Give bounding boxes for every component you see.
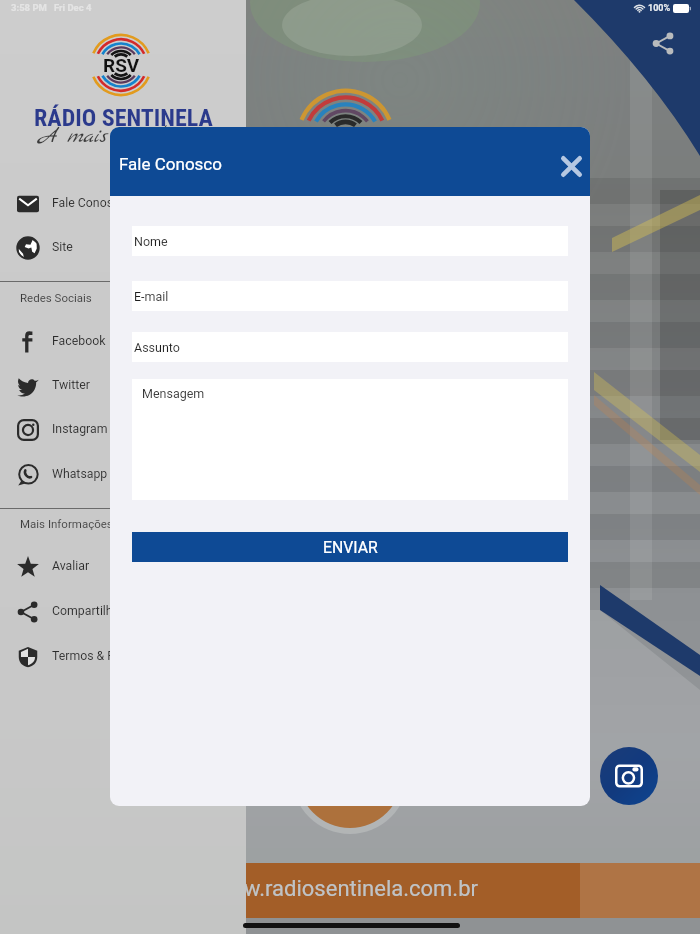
button[interactable]: Avaliar [0, 544, 246, 588]
staticText: RSV [315, 120, 377, 157]
staticText: Whatsapp [52, 467, 108, 481]
button[interactable]: Facebook [0, 319, 246, 363]
staticText: Redes Sociais [20, 291, 92, 304]
staticText: Twitter [52, 378, 90, 392]
button[interactable]: Instagram [600, 747, 658, 805]
button[interactable]: Nome [132, 226, 568, 256]
button[interactable]: Fechar [551, 146, 590, 186]
button[interactable]: E-mail [132, 281, 568, 311]
button[interactable]: Fale Conosco [110, 127, 590, 196]
button[interactable]: Twitter [0, 363, 246, 407]
button[interactable]: Termos & Políticas [0, 634, 246, 678]
staticText: RÁDIO SENTINELA [34, 104, 213, 132]
staticText: Fale Conosco [119, 154, 222, 174]
staticText: Avaliar [52, 559, 90, 573]
staticText: RSV [101, 53, 142, 77]
staticText: Mais Informações [20, 517, 113, 530]
button[interactable]: Site [0, 225, 246, 269]
staticText: RSV [103, 54, 140, 76]
button[interactable]: Mensagem [132, 379, 568, 500]
button[interactable]: Compartilhar [645, 25, 681, 61]
staticText: Facebook [52, 334, 106, 348]
button[interactable]: Instagram [0, 407, 246, 451]
staticText: A mais popular [39, 123, 180, 150]
staticText: Compartilhar [52, 604, 124, 618]
staticText: E-mail [134, 289, 169, 304]
staticText: Fale Conosco [52, 196, 127, 210]
button[interactable]: ENVIAR [132, 532, 568, 562]
staticText: ENVIAR [323, 538, 378, 557]
staticText: www.radiosentinela.com.br [211, 876, 478, 902]
staticText: Nome [134, 234, 168, 249]
staticText: Termos & Políticas [52, 649, 155, 663]
staticText: 100% [648, 3, 671, 14]
button[interactable]: Fale Conosco [0, 181, 246, 225]
staticText: 3:58 PM Fri Dec 4 [11, 2, 92, 13]
staticText: Mensagem [142, 386, 205, 401]
button[interactable]: Whatsapp [0, 452, 246, 496]
button[interactable]: Compartilhar [0, 589, 246, 633]
staticText: RSV [318, 122, 374, 156]
staticText: Instagram [52, 422, 108, 436]
staticText: Site [52, 240, 73, 254]
button[interactable]: Assunto [132, 332, 568, 362]
staticText: Assunto [134, 340, 180, 355]
